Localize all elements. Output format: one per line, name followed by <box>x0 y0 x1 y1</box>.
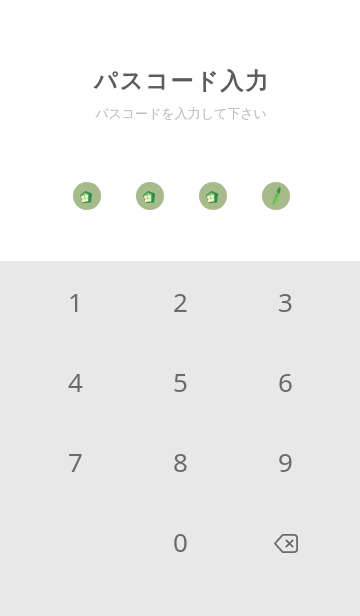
staticText: 7 <box>68 444 83 479</box>
button[interactable]: 0 <box>128 501 233 581</box>
staticText: 9 <box>278 444 293 479</box>
staticText: 6 <box>278 364 293 399</box>
button[interactable]: 9 <box>233 421 338 501</box>
button[interactable]: Delete <box>233 501 338 581</box>
button[interactable]: 6 <box>233 341 338 421</box>
button[interactable]: 5 <box>128 341 233 421</box>
staticText: パスコードを入力して下さい <box>95 105 267 121</box>
staticText: 5 <box>173 364 188 399</box>
button[interactable]: 8 <box>128 421 233 501</box>
button[interactable]: 4 <box>23 341 128 421</box>
button[interactable]: 1 <box>23 261 128 341</box>
staticText: 2 <box>173 284 188 319</box>
staticText: 3 <box>278 284 293 319</box>
staticText: 0 <box>173 524 188 559</box>
staticText: 8 <box>173 444 188 479</box>
staticText: パスコード入力 <box>94 67 270 96</box>
staticText: 4 <box>68 364 83 399</box>
button[interactable]: 3 <box>233 261 338 341</box>
staticText: 1 <box>68 284 83 319</box>
button[interactable]: 7 <box>23 421 128 501</box>
button[interactable]: 2 <box>128 261 233 341</box>
